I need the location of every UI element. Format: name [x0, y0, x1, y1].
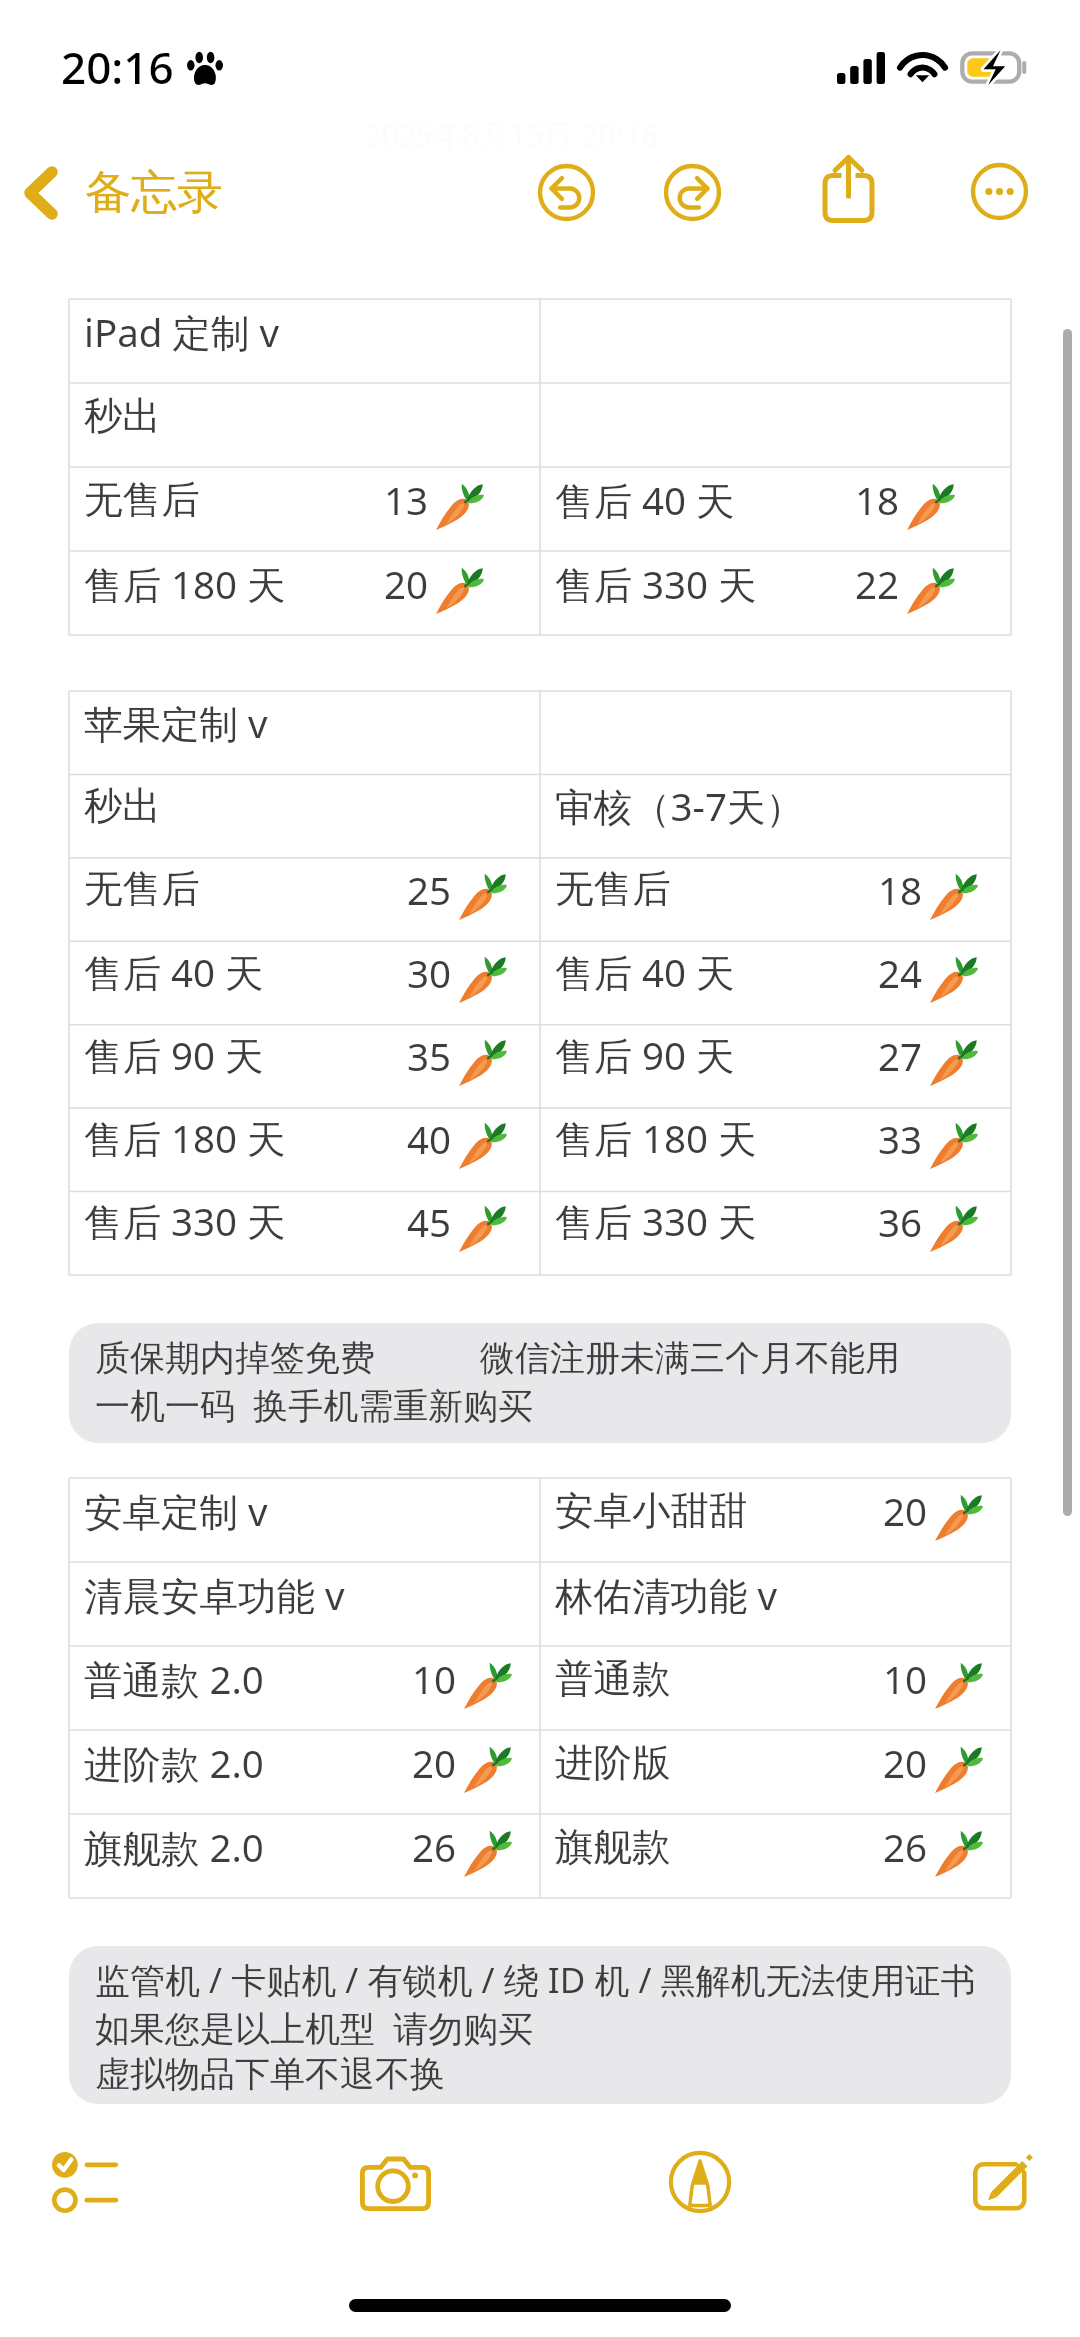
button[interactable]: Camera: [345, 2134, 445, 2230]
button[interactable]: New note: [952, 2132, 1052, 2228]
staticText: 质保期内掉签免费 微信注册未满三个月不能用: [95, 1333, 900, 1381]
staticText: 旗舰款: [555, 1823, 671, 1872]
staticText: 清晨安卓功能 v: [84, 1569, 345, 1622]
button[interactable]: Undo: [522, 148, 610, 236]
staticText: 售后 330 天: [555, 558, 757, 611]
staticText: 27: [878, 1030, 923, 1082]
button[interactable]: 售后 330 天: [540, 551, 1011, 635]
staticText: 进阶版: [555, 1739, 671, 1788]
staticText: 售后 40 天: [84, 946, 264, 999]
staticText: 45: [407, 1196, 452, 1248]
button[interactable]: 售后 330 天: [69, 1189, 540, 1272]
button[interactable]: 售后 40 天: [69, 940, 540, 1023]
button[interactable]: Markup: [650, 2134, 750, 2230]
staticText: 售后 330 天: [84, 1195, 286, 1248]
button[interactable]: iPad 定制 v: [69, 299, 540, 383]
staticText: 苹果定制 v: [84, 697, 268, 750]
button[interactable]: 进阶版: [540, 1730, 1011, 1814]
button[interactable]: 林佑清功能 v: [540, 1562, 1011, 1646]
staticText: 监管机 / 卡贴机 / 有锁机 / 绕 ID 机 / 黑解机无法使用证书: [95, 1956, 976, 2004]
staticText: 无售后: [84, 476, 200, 525]
staticText: 安卓定制 v: [84, 1485, 268, 1538]
staticText: 秒出: [84, 782, 161, 831]
button[interactable]: 售后 40 天: [540, 940, 1011, 1023]
staticText: 20: [883, 1737, 928, 1789]
staticText: 售后 180 天: [84, 1112, 286, 1165]
button[interactable]: 清晨安卓功能 v: [69, 1562, 540, 1646]
staticText: 18: [878, 864, 923, 916]
staticText: 秒出: [84, 392, 161, 441]
staticText: 普通款 2.0: [84, 1653, 264, 1706]
staticText: 无售后: [84, 865, 200, 914]
button[interactable]: 安卓定制 v: [69, 1478, 540, 1562]
button[interactable]: Share: [804, 145, 892, 233]
staticText: 一机一码 换手机需重新购买: [95, 1381, 534, 1429]
button[interactable]: 审核（3-7天）: [540, 774, 1011, 857]
button[interactable]: 售后 180 天: [69, 551, 540, 635]
staticText: 20: [883, 1485, 928, 1537]
button[interactable]: 售后 180 天: [540, 1106, 1011, 1189]
button[interactable]: 售后 180 天: [69, 1106, 540, 1189]
staticText: 18: [855, 474, 900, 526]
button[interactable]: 无售后: [69, 467, 540, 551]
staticText: 26: [883, 1821, 928, 1873]
staticText: 无售后: [555, 865, 671, 914]
staticText: 25: [407, 864, 452, 916]
button[interactable]: 苹果定制 v: [69, 691, 540, 774]
button[interactable]: [540, 299, 1011, 383]
button[interactable]: 安卓小甜甜: [540, 1478, 1011, 1562]
staticText: 24: [878, 947, 923, 999]
button[interactable]: Redo: [648, 148, 736, 236]
staticText: 进阶款 2.0: [84, 1737, 264, 1790]
staticText: 虚拟物品下单不退不换: [95, 2052, 445, 2096]
staticText: 36: [878, 1196, 923, 1248]
staticText: 20: [412, 1737, 457, 1789]
button[interactable]: 备忘录: [10, 150, 241, 236]
staticText: 备忘录: [85, 164, 223, 222]
staticText: 普通款: [555, 1655, 671, 1704]
staticText: 30: [407, 947, 452, 999]
button[interactable]: [540, 383, 1011, 467]
staticText: 如果您是以上机型 请勿购买: [95, 2004, 534, 2052]
staticText: 旗舰款 2.0: [84, 1821, 264, 1874]
staticText: 26: [412, 1821, 457, 1873]
staticText: 审核（3-7天）: [555, 780, 804, 833]
staticText: iPad 定制 v: [84, 306, 280, 359]
button[interactable]: 秒出: [69, 774, 540, 857]
button[interactable]: More: [955, 147, 1043, 235]
button[interactable]: 普通款 2.0: [69, 1646, 540, 1730]
staticText: 22: [855, 558, 900, 610]
button[interactable]: [540, 691, 1011, 774]
staticText: 40: [407, 1113, 452, 1165]
button[interactable]: 进阶款 2.0: [69, 1730, 540, 1814]
staticText: 10: [883, 1653, 928, 1705]
staticText: 安卓小甜甜: [555, 1487, 748, 1536]
button[interactable]: 售后 90 天: [540, 1023, 1011, 1106]
staticText: 售后 90 天: [555, 1029, 735, 1082]
staticText: 售后 40 天: [555, 474, 735, 527]
staticText: 33: [878, 1113, 923, 1165]
button[interactable]: 无售后: [540, 857, 1011, 940]
button[interactable]: 普通款: [540, 1646, 1011, 1730]
staticText: 35: [407, 1030, 452, 1082]
staticText: 10: [412, 1653, 457, 1705]
button[interactable]: 无售后: [69, 857, 540, 940]
staticText: 售后 90 天: [84, 1029, 264, 1082]
button[interactable]: 售后 90 天: [69, 1023, 540, 1106]
button[interactable]: 秒出: [69, 383, 540, 467]
button[interactable]: Checklist: [35, 2134, 135, 2230]
staticText: 售后 40 天: [555, 946, 735, 999]
staticText: 售后 180 天: [555, 1112, 757, 1165]
button[interactable]: 售后 330 天: [540, 1189, 1011, 1272]
button[interactable]: 售后 40 天: [540, 467, 1011, 551]
button[interactable]: 旗舰款 2.0: [69, 1814, 540, 1898]
staticText: 20:16: [61, 37, 174, 97]
staticText: 13: [384, 474, 429, 526]
staticText: 林佑清功能 v: [555, 1569, 778, 1622]
staticText: 20: [384, 558, 429, 610]
staticText: 售后 180 天: [84, 558, 286, 611]
staticText: 售后 330 天: [555, 1195, 757, 1248]
button[interactable]: 旗舰款: [540, 1814, 1011, 1898]
